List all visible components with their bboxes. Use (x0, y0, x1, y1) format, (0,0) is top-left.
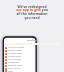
button[interactable]: Savings goals (4, 55, 60, 58)
staticText: Card settings (8, 58, 21, 61)
staticText: Upcoming bills (8, 52, 23, 55)
button[interactable]: Recent activity (4, 49, 60, 52)
staticText: Overview (27, 39, 38, 42)
staticText: We've redesigned our app to give you all… (16, 4, 48, 20)
button[interactable]: Rewards points (4, 64, 60, 67)
staticText: Help (8, 70, 13, 72)
staticText: Send money (8, 67, 21, 70)
button[interactable]: Statements (4, 61, 60, 64)
staticText: Recent activity (8, 49, 23, 52)
button[interactable]: Account balance (4, 46, 60, 49)
button[interactable]: Upcoming bills (4, 52, 60, 55)
button[interactable]: Help (4, 70, 60, 72)
staticText: Rewards points (8, 64, 24, 67)
staticText: Account balance (8, 46, 25, 49)
staticText: Statements (8, 61, 20, 64)
staticText: Savings goals (8, 55, 22, 58)
button[interactable]: Card settings (4, 58, 60, 61)
button[interactable]: Send money (4, 67, 60, 70)
